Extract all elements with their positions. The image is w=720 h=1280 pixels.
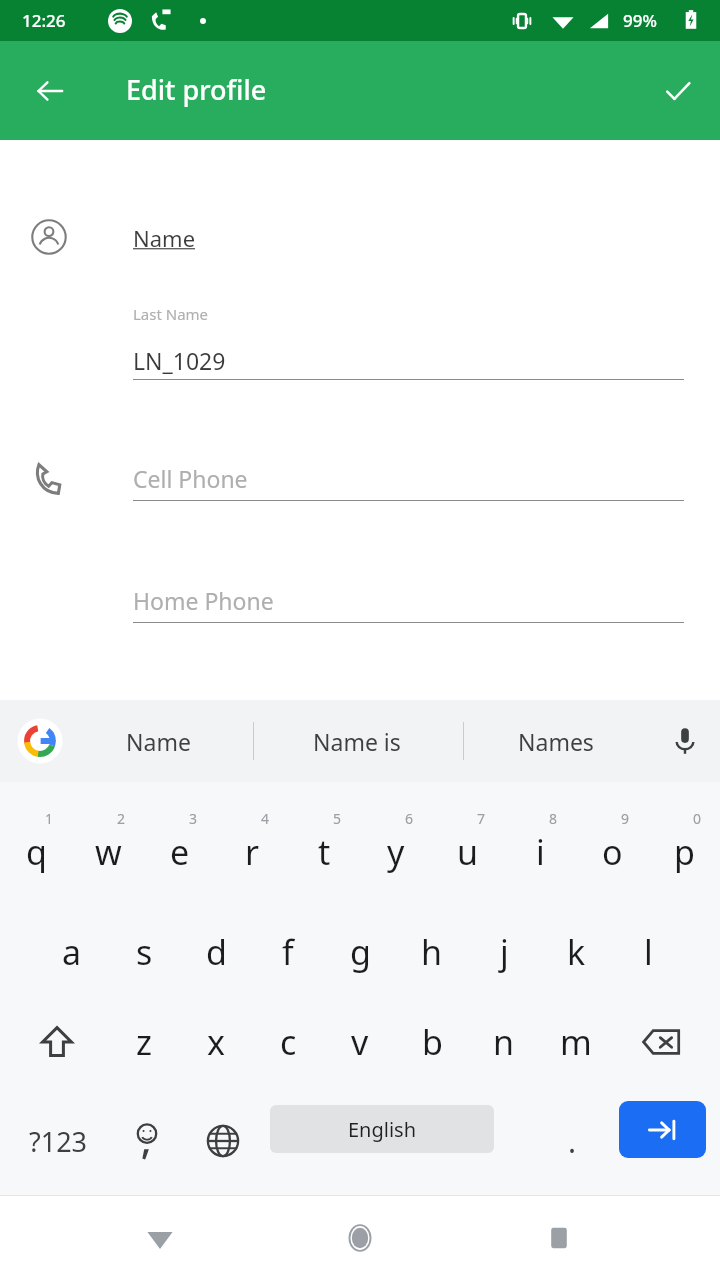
button[interactable]: ?123 bbox=[8, 1092, 108, 1190]
button[interactable]: f bbox=[252, 892, 324, 992]
staticText: x bbox=[207, 1019, 225, 1065]
button[interactable]: k bbox=[540, 892, 612, 992]
button[interactable]: 5 bbox=[288, 792, 360, 892]
button[interactable]: Name bbox=[133, 223, 196, 253]
button[interactable]: Home Phone bbox=[133, 585, 274, 616]
button[interactable]: Name bbox=[25, 213, 73, 261]
button[interactable]: c bbox=[252, 992, 324, 1092]
button[interactable]: 3 bbox=[144, 792, 216, 892]
staticText: 3 bbox=[189, 809, 198, 828]
button[interactable]: b bbox=[396, 992, 468, 1092]
staticText: 7 bbox=[477, 809, 486, 828]
staticText: j bbox=[500, 929, 509, 975]
staticText: 5 bbox=[333, 809, 342, 828]
button[interactable]: v bbox=[324, 992, 396, 1092]
button[interactable]: Home bbox=[320, 1195, 400, 1280]
button[interactable]: 1 bbox=[0, 792, 72, 892]
staticText: q bbox=[26, 829, 47, 875]
staticText: k bbox=[567, 929, 586, 975]
staticText: m bbox=[560, 1019, 592, 1065]
button[interactable]: Name is bbox=[272, 700, 442, 782]
staticText: 4 bbox=[261, 809, 270, 828]
staticText: 6 bbox=[405, 809, 414, 828]
staticText: z bbox=[136, 1019, 152, 1065]
staticText: English bbox=[348, 1116, 417, 1143]
button[interactable]: l bbox=[612, 892, 684, 992]
button[interactable]: 4 bbox=[216, 792, 288, 892]
button[interactable]: a bbox=[36, 892, 108, 992]
button[interactable]: m bbox=[540, 992, 612, 1092]
staticText: 0 bbox=[693, 809, 702, 828]
staticText: 1 bbox=[45, 809, 54, 828]
staticText: p bbox=[674, 829, 695, 875]
button[interactable]: Change language bbox=[186, 1092, 260, 1190]
button[interactable]: Voice input bbox=[657, 713, 713, 769]
button[interactable]: 8 bbox=[504, 792, 576, 892]
button[interactable]: 7 bbox=[432, 792, 504, 892]
button[interactable]: Back bbox=[120, 1195, 200, 1280]
staticText: g bbox=[350, 929, 371, 975]
staticText: r bbox=[245, 829, 260, 875]
staticText: Last Name bbox=[133, 304, 209, 324]
staticText: e bbox=[170, 829, 190, 875]
button[interactable]: LN_1029 bbox=[133, 345, 226, 376]
staticText: n bbox=[493, 1019, 515, 1065]
button[interactable]: 0 bbox=[648, 792, 720, 892]
staticText: h bbox=[421, 929, 443, 975]
button[interactable]: . bbox=[540, 1092, 604, 1190]
button[interactable]: x bbox=[180, 992, 252, 1092]
staticText: u bbox=[457, 829, 479, 875]
staticText: c bbox=[280, 1019, 297, 1065]
staticText: 12:26 bbox=[22, 9, 66, 32]
staticText: Name bbox=[126, 726, 191, 757]
button[interactable]: Next field bbox=[619, 1101, 706, 1158]
staticText: . bbox=[568, 1121, 577, 1162]
staticText: Name is bbox=[313, 726, 401, 757]
staticText: a bbox=[62, 929, 82, 975]
button[interactable]: j bbox=[468, 892, 540, 992]
staticText: ?123 bbox=[29, 1123, 88, 1160]
staticText: f bbox=[282, 929, 294, 975]
staticText: s bbox=[136, 929, 153, 975]
staticText: i bbox=[536, 829, 545, 875]
button[interactable]: Backspace bbox=[616, 992, 708, 1092]
staticText: d bbox=[206, 929, 227, 975]
button[interactable]: Google bbox=[12, 713, 68, 769]
button[interactable]: Shift bbox=[12, 992, 102, 1092]
button[interactable]: Cell Phone bbox=[133, 463, 248, 494]
staticText: 8 bbox=[549, 809, 558, 828]
button[interactable]: Recents bbox=[519, 1195, 599, 1280]
button[interactable]: n bbox=[468, 992, 540, 1092]
button[interactable]: h bbox=[396, 892, 468, 992]
button[interactable]: s bbox=[108, 892, 180, 992]
staticText: Edit profile bbox=[126, 71, 267, 108]
staticText: b bbox=[422, 1019, 443, 1065]
button[interactable]: Back bbox=[22, 63, 78, 119]
button[interactable]: Name bbox=[73, 700, 243, 782]
staticText: y bbox=[387, 829, 405, 875]
staticText: 9 bbox=[621, 809, 630, 828]
staticText: v bbox=[351, 1019, 369, 1065]
button[interactable]: Names bbox=[471, 700, 641, 782]
staticText: Names bbox=[518, 726, 594, 757]
button[interactable]: 9 bbox=[576, 792, 648, 892]
button[interactable]: z bbox=[108, 992, 180, 1092]
staticText: l bbox=[644, 929, 653, 975]
button[interactable]: Emoji and comma bbox=[110, 1092, 184, 1190]
staticText: t bbox=[318, 829, 331, 875]
button[interactable]: 6 bbox=[360, 792, 432, 892]
staticText: w bbox=[95, 829, 122, 875]
button[interactable]: g bbox=[324, 892, 396, 992]
button[interactable]: Phone bbox=[25, 455, 73, 503]
staticText: 2 bbox=[117, 809, 126, 828]
staticText: o bbox=[602, 829, 623, 875]
button[interactable]: 2 bbox=[72, 792, 144, 892]
button[interactable]: Save bbox=[649, 62, 707, 120]
button[interactable]: English bbox=[270, 1105, 494, 1153]
staticText: 99% bbox=[623, 9, 657, 32]
button[interactable]: d bbox=[180, 892, 252, 992]
